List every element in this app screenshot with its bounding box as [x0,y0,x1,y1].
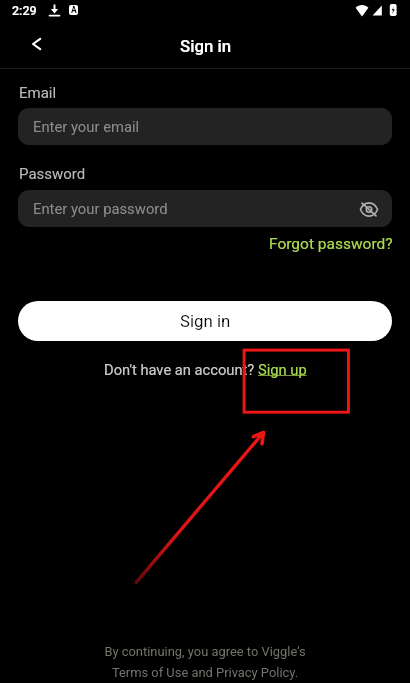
staticText: Sign in [180,36,232,56]
staticText: Enter your password [33,200,168,217]
button[interactable]: Show password [354,194,384,224]
staticText: Don't have an account? [104,361,258,378]
staticText: A [71,5,77,15]
staticText: Password [19,165,86,183]
staticText: 2:29 [12,3,37,18]
staticText: Sign up [258,361,307,378]
staticText: Terms of Use and Privacy Policy. [0,665,410,680]
staticText: By continuing, you agree to Viggle's [0,644,410,659]
staticText: Sign in [180,311,231,331]
button[interactable]: Enter your password [18,190,392,227]
staticText: Enter your email [33,118,140,135]
button[interactable]: Sign in [18,301,392,341]
button[interactable]: Enter your email [18,108,392,145]
button[interactable]: Back [20,30,54,64]
button[interactable]: Forgot password? [269,235,393,253]
button[interactable]: Sign up [258,361,307,378]
staticText: Forgot password? [269,235,393,253]
staticText: Email [19,84,57,102]
